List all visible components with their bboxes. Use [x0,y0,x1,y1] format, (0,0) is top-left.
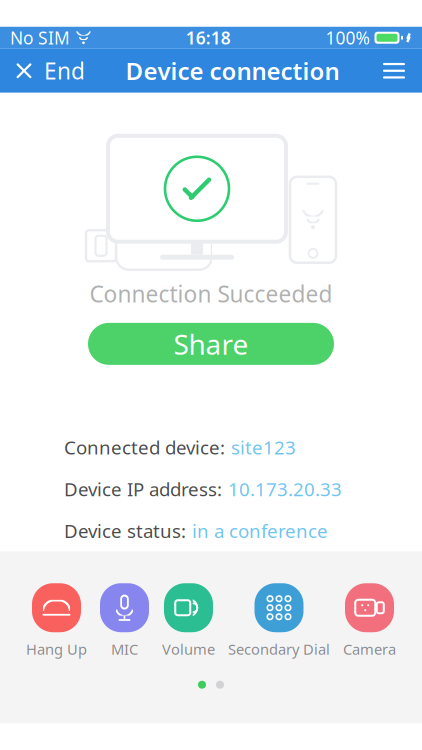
button[interactable]: Secondary Dial [228,583,330,659]
staticText: Secondary Dial [228,639,330,659]
staticText: site123 [231,435,296,460]
button[interactable]: Volume [162,583,215,659]
button[interactable]: Camera [343,583,396,659]
staticText: End [44,56,85,86]
staticText: Connected device: [64,435,225,460]
staticText: Hang Up [26,639,87,659]
button[interactable]: Hang Up [26,583,87,659]
staticText: in a conference [192,518,328,543]
staticText: 100% [325,26,369,49]
staticText: Connection Succeeded [89,279,332,309]
staticText: 10.173.20.33 [228,477,342,501]
staticText: Camera [343,639,396,659]
staticText: Device status: [64,518,186,543]
staticText: Device IP address: [64,477,222,501]
staticText: Share [173,325,248,362]
button[interactable]: Share [88,323,334,365]
button[interactable]: End [0,49,99,93]
staticText: Device connection [125,55,339,87]
staticText: Volume [162,639,215,659]
button[interactable]: MIC [100,583,149,659]
button[interactable]: Menu [366,49,422,93]
staticText: No SIM [10,26,70,49]
staticText: MIC [111,639,138,659]
staticText: 16:18 [186,26,231,49]
